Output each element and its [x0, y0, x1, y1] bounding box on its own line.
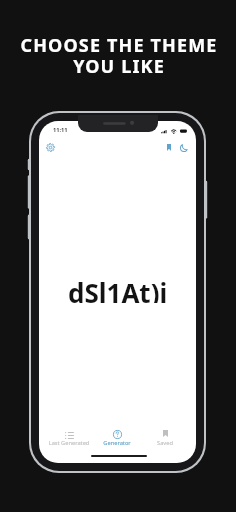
- staticText: dSl1At)i: [68, 275, 168, 303]
- button[interactable]: Saved passwords: [160, 139, 177, 156]
- button[interactable]: Dark mode: [175, 139, 192, 156]
- button[interactable]: Saved: [141, 426, 189, 449]
- staticText: Last Generated: [45, 439, 93, 447]
- staticText: 11:11: [53, 126, 68, 134]
- button[interactable]: Last Generated: [45, 426, 93, 449]
- button[interactable]: Generator: [93, 426, 141, 449]
- button[interactable]: Settings: [42, 139, 59, 156]
- staticText: CHOOSE THE THEME YOU LIKE: [1, 33, 236, 78]
- staticText: Generator: [93, 439, 141, 447]
- staticText: Saved: [141, 439, 189, 447]
